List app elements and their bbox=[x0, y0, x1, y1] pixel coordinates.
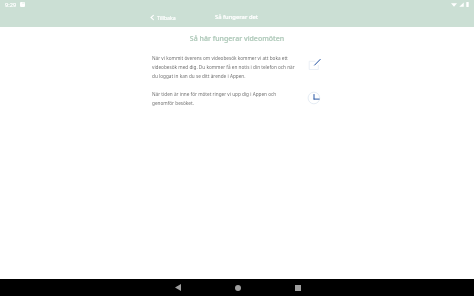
staticText: 9:29 bbox=[5, 1, 17, 9]
staticText: När vi kommit överens om videobesök komm… bbox=[152, 55, 295, 79]
button[interactable]: Back bbox=[169, 279, 186, 296]
staticText: När tiden är inne för mötet ringer vi up… bbox=[152, 91, 295, 106]
staticText: Så här fungerar videomöten bbox=[0, 34, 474, 44]
staticText: Så fungerar det bbox=[215, 13, 259, 21]
button[interactable]: Home bbox=[229, 279, 246, 296]
staticText: Tillbaka bbox=[157, 14, 176, 21]
button[interactable]: Tillbaka bbox=[150, 14, 176, 21]
button[interactable]: Recent apps bbox=[289, 279, 306, 296]
